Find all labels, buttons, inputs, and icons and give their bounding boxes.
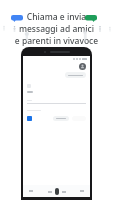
button[interactable]: Microfono — [55, 188, 59, 195]
button[interactable]: Altro — [79, 188, 85, 194]
button[interactable]: Contatti — [47, 189, 53, 195]
staticText: messaggi ad amici — [14, 23, 99, 35]
button[interactable] — [65, 72, 86, 78]
staticText: Chiama e invia — [14, 11, 99, 23]
button[interactable] — [53, 116, 69, 121]
button[interactable]: Tastiera — [61, 189, 67, 195]
button[interactable]: Casella di controllo — [27, 116, 32, 121]
button[interactable]: Profilo — [79, 63, 86, 70]
button[interactable]: Indietro — [28, 188, 34, 194]
staticText: e parenti in vivavoce — [14, 35, 99, 47]
